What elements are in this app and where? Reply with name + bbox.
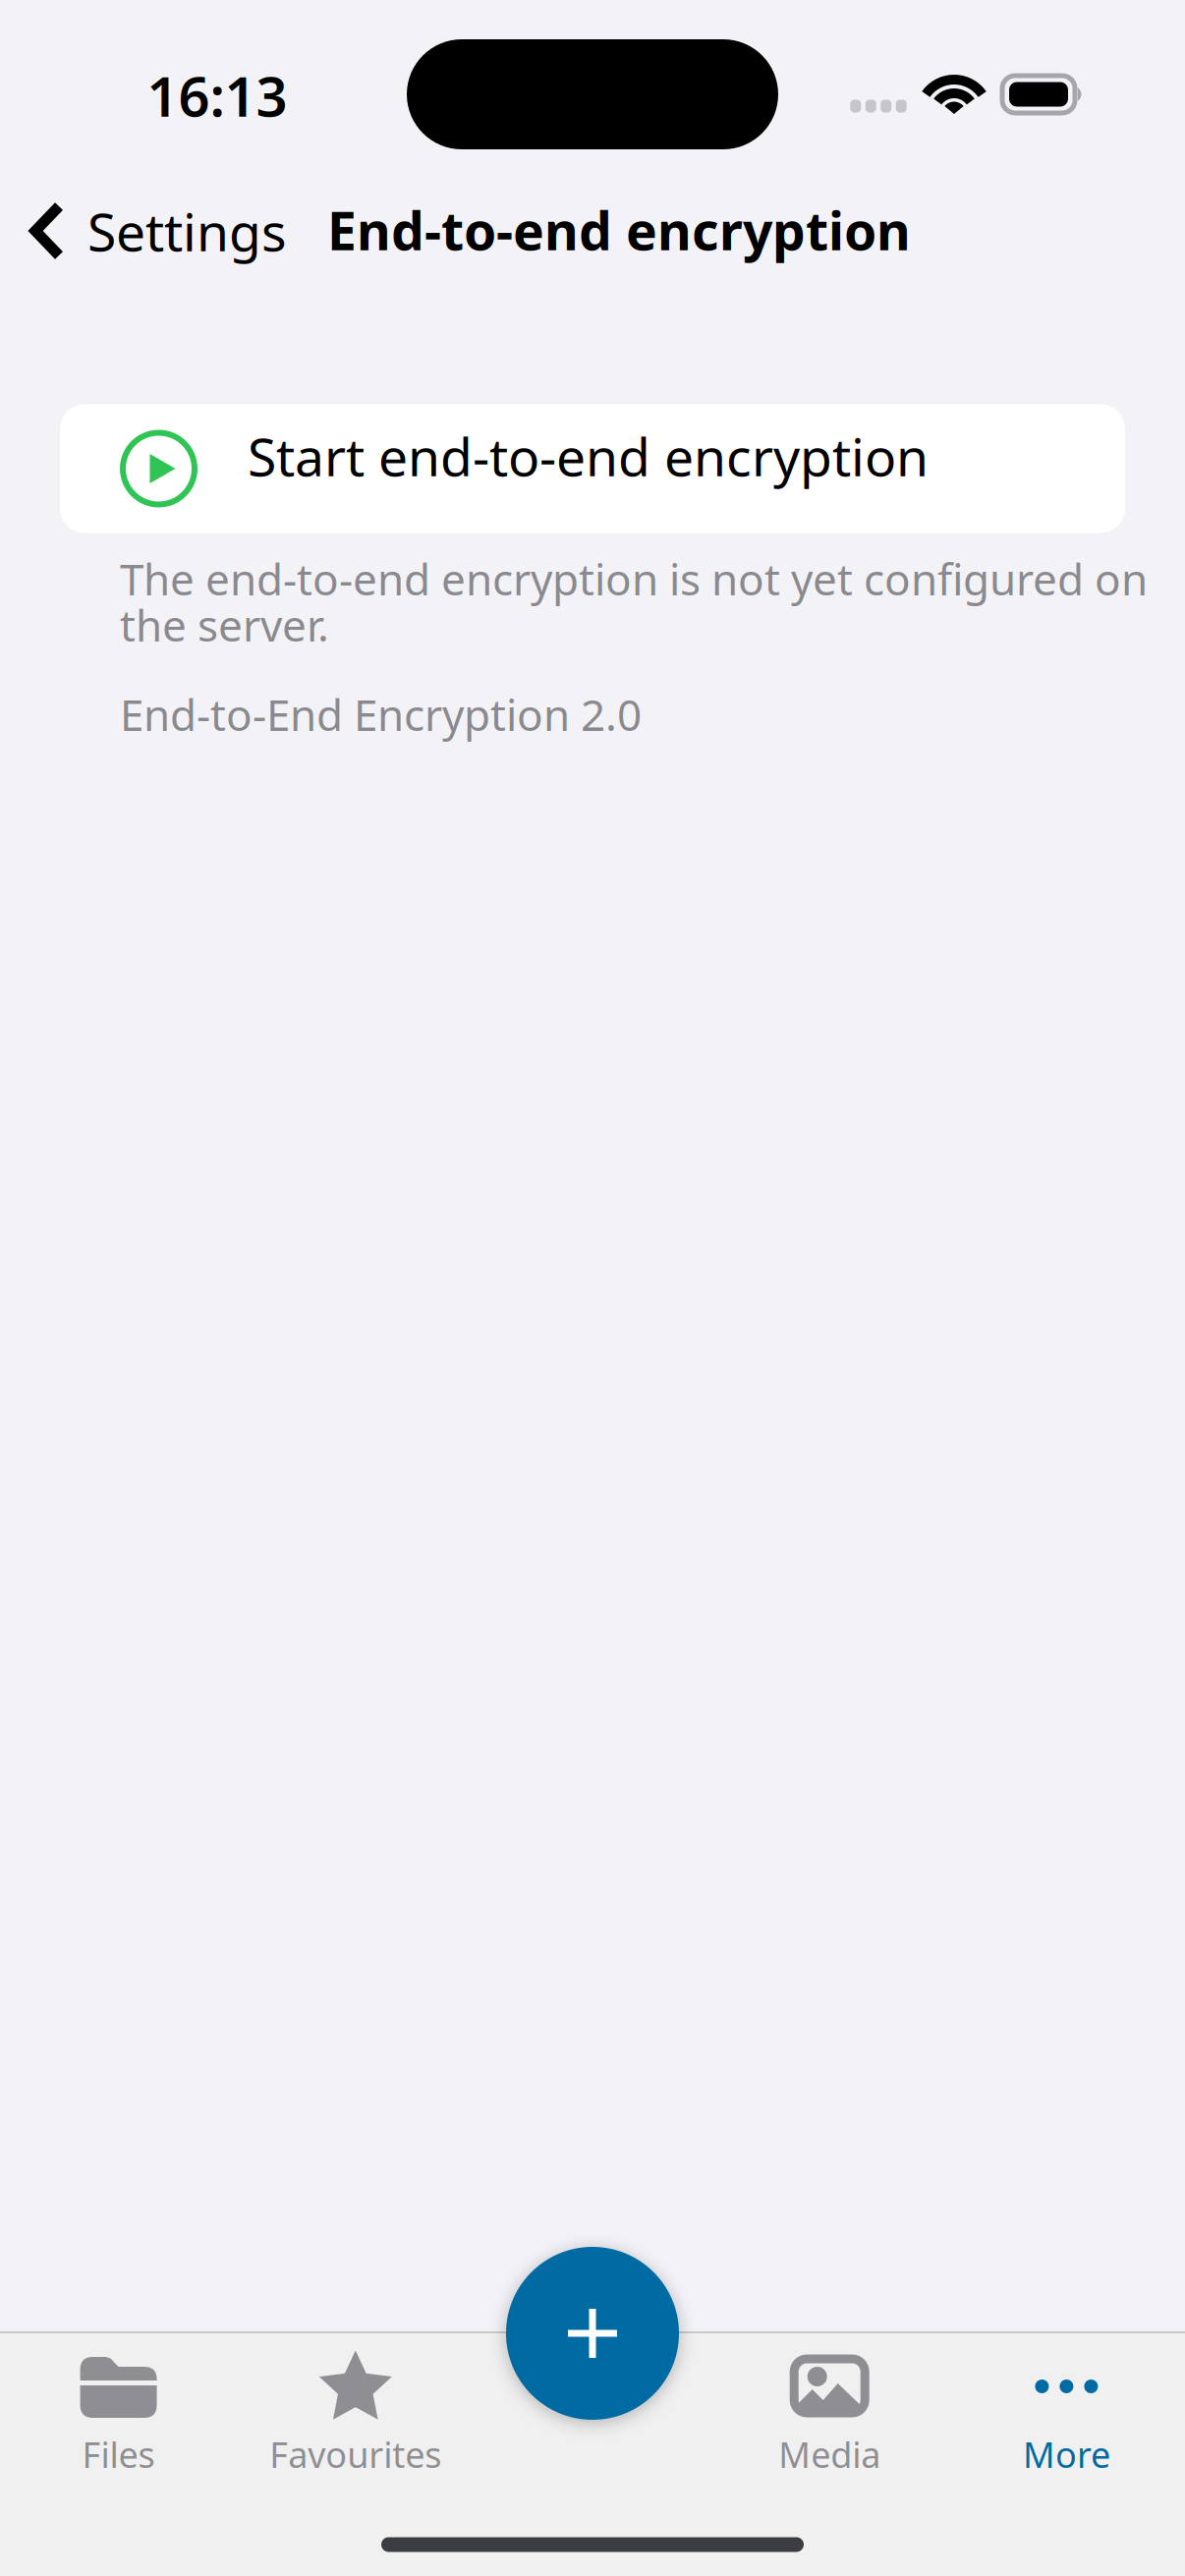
staticText: The end-to-end encryption is not yet con… [120,550,1148,607]
button[interactable]: Media [711,2332,948,2576]
button[interactable]: Start end-to-end encryption [60,404,1125,533]
button[interactable]: Favourites [237,2332,474,2576]
staticText: 16:13 [147,59,287,132]
staticText: Media [778,2431,881,2478]
staticText: More [1023,2431,1110,2478]
staticText: Settings [87,196,287,266]
staticText: Favourites [270,2431,441,2478]
button[interactable]: More [948,2332,1185,2576]
staticText: Files [82,2431,155,2478]
button[interactable]: Create [504,2245,681,2422]
staticText: End-to-End Encryption 2.0 [120,686,642,743]
button[interactable]: Settings [28,176,287,285]
button[interactable]: Files [0,2332,237,2576]
staticText: the server. [120,596,329,654]
staticText: End-to-end encryption [327,195,911,265]
staticText: Start end-to-end encryption [248,421,929,491]
